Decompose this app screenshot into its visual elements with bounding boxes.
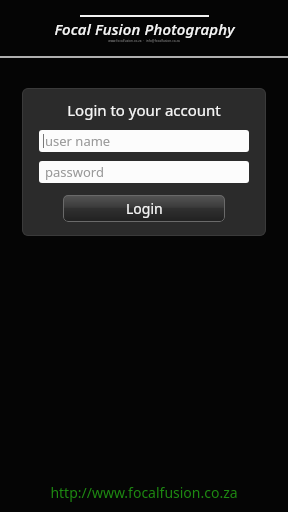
button[interactable]: Login <box>63 195 225 222</box>
button[interactable]: password <box>39 161 249 183</box>
staticText: http://www.focalfusion.co.za <box>50 483 238 502</box>
staticText: www.focalfusion.co.za · info@focalfusion… <box>108 39 180 43</box>
staticText: Focal Fusion Photography <box>54 19 235 39</box>
staticText: Login <box>126 199 163 218</box>
staticText: Login to your account <box>39 100 249 120</box>
staticText: password <box>45 163 104 181</box>
button[interactable]: user name <box>39 130 249 152</box>
button[interactable]: http://www.focalfusion.co.za <box>0 481 288 503</box>
staticText: user name <box>45 132 111 150</box>
